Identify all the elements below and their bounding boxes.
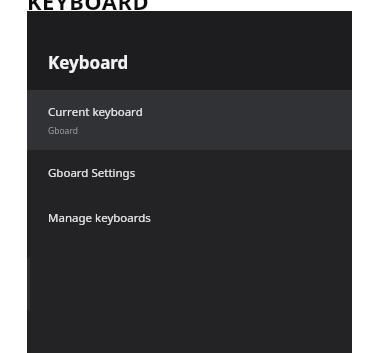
staticText: Gboard Settings	[48, 165, 136, 181]
staticText: Manage keyboards	[48, 210, 151, 226]
button[interactable]: Current keyboard	[27, 90, 352, 150]
staticText: KEYBOARD	[27, 0, 150, 10]
button[interactable]: Gboard Settings	[27, 150, 352, 195]
staticText: Current keyboard	[48, 104, 143, 120]
staticText: Keyboard	[48, 51, 129, 74]
button[interactable]: Manage keyboards	[27, 195, 352, 240]
staticText: Gboard	[48, 125, 78, 137]
